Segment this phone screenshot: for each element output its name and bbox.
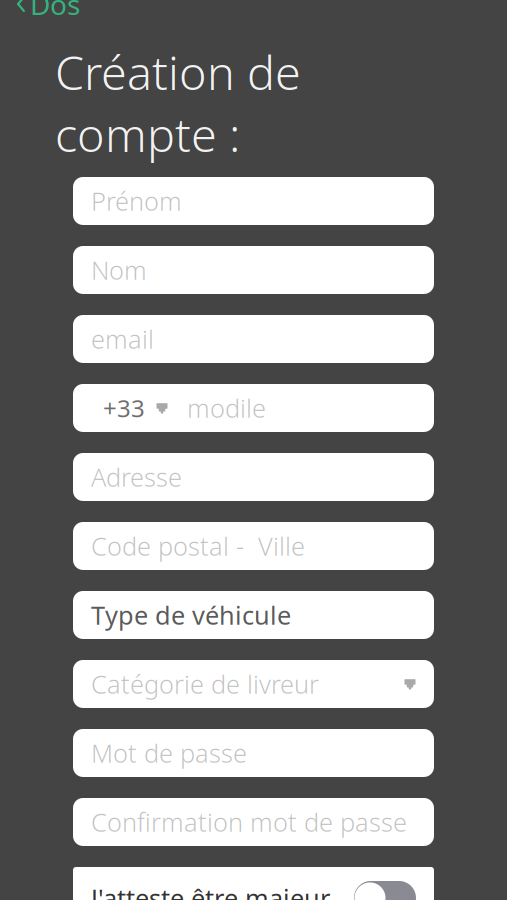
staticText: Prénom bbox=[91, 184, 182, 218]
button[interactable]: Dos bbox=[0, 0, 80, 27]
staticText: Type de véhicule bbox=[91, 598, 291, 632]
button[interactable]: J'atteste être majeur bbox=[354, 878, 416, 900]
staticText: email bbox=[91, 322, 154, 356]
staticText: modile bbox=[187, 391, 266, 425]
staticText: Code postal - Ville bbox=[91, 529, 305, 563]
staticText: Nom bbox=[91, 253, 147, 287]
staticText: Adresse bbox=[91, 460, 182, 494]
staticText: Mot de passe bbox=[91, 736, 247, 770]
button[interactable]: Catégorie de livreur bbox=[73, 660, 434, 708]
staticText: Catégorie de livreur bbox=[91, 667, 319, 701]
staticText: Dos bbox=[30, 0, 80, 23]
staticText: Confirmation mot de passe bbox=[91, 805, 407, 839]
staticText: Création de compte : bbox=[55, 41, 301, 165]
staticText: +33 bbox=[103, 392, 145, 424]
staticText: J'atteste être majeur bbox=[91, 881, 330, 900]
